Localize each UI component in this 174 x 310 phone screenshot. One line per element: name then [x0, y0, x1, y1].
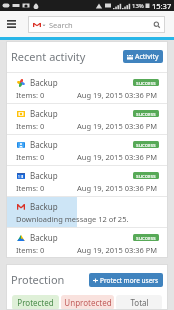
staticText: Items: 0 — [16, 245, 45, 255]
button[interactable]: Backup — [6, 166, 168, 196]
staticText: Protect more users — [100, 276, 159, 285]
button[interactable]: Menu — [3, 14, 20, 34]
staticText: success — [136, 110, 156, 117]
staticText: Items: 0 — [16, 152, 45, 162]
button[interactable]: Search — [28, 16, 165, 33]
staticText: Items: 0 — [16, 183, 45, 193]
staticText: success — [136, 172, 156, 179]
staticText: Backup — [30, 77, 58, 88]
staticText: Protected — [17, 297, 54, 308]
staticText: Items: 0 — [16, 121, 45, 131]
staticText: success — [136, 79, 156, 86]
staticText: 13% — [132, 2, 144, 10]
staticText: Aug 19, 2015 03:36 PM — [77, 245, 158, 255]
staticText: Backup — [30, 139, 58, 150]
staticText: Items: 0 — [16, 90, 45, 100]
staticText: Aug 19, 2015 03:36 PM — [77, 183, 158, 193]
staticText: Protection — [11, 272, 65, 287]
button[interactable]: Protected — [12, 295, 59, 310]
button[interactable]: Protect more users — [89, 273, 163, 287]
button[interactable]: Unprotected — [61, 295, 114, 310]
button[interactable]: Backup — [6, 135, 168, 165]
staticText: Unprotected — [64, 297, 112, 308]
staticText: Backup — [30, 170, 58, 181]
staticText: Recent activity — [11, 49, 86, 64]
button[interactable]: Backup — [6, 197, 168, 227]
staticText: Aug 19, 2015 03:36 PM — [77, 90, 158, 100]
staticText: Search — [49, 20, 73, 30]
staticText: Aug 19, 2015 03:36 PM — [77, 152, 158, 162]
staticText: success — [136, 141, 156, 148]
staticText: Downloading message 12 of 25. — [16, 214, 129, 224]
staticText: success — [136, 234, 156, 241]
button[interactable]: Backup — [6, 228, 168, 258]
button[interactable]: Activity — [123, 50, 163, 63]
button[interactable]: Backup — [6, 104, 168, 134]
button[interactable]: Backup — [6, 73, 168, 103]
staticText: Backup — [30, 108, 58, 119]
staticText: Aug 19, 2015 03:36 PM — [77, 121, 158, 131]
staticText: Total — [130, 297, 149, 308]
staticText: Backup — [30, 201, 58, 212]
staticText: Activity — [135, 52, 159, 62]
staticText: Backup — [30, 232, 58, 243]
button[interactable]: Total — [116, 295, 162, 310]
staticText: 15:37 — [152, 1, 172, 11]
